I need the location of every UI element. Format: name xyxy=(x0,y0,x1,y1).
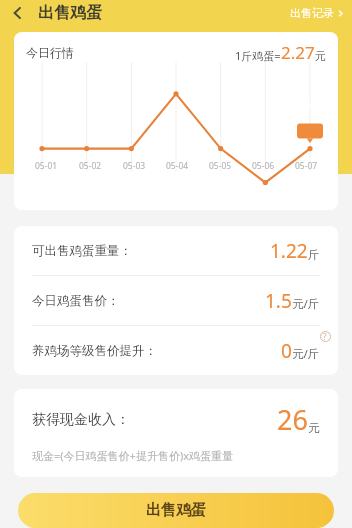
staticText: 获得现金收入： xyxy=(32,411,130,429)
staticText: 现金=(今日鸡蛋售价+提升售价)x鸡蛋重量 xyxy=(32,448,234,463)
staticText: 05-07 xyxy=(295,160,318,172)
staticText: 元/斤 xyxy=(292,296,320,312)
staticText: 1.22 xyxy=(270,238,308,264)
button[interactable]: 可出售鸡蛋重量： xyxy=(14,226,338,275)
staticText: 今日行情 xyxy=(26,45,74,60)
staticText: 05-05 xyxy=(209,160,232,172)
staticText: 养鸡场等级售价提升： xyxy=(32,343,157,359)
staticText: 元 xyxy=(315,49,326,63)
staticText: 出售鸡蛋 xyxy=(146,501,206,520)
staticText: 05-04 xyxy=(166,160,189,172)
staticText: 元/斤 xyxy=(292,346,320,362)
staticText: 0 xyxy=(281,338,292,364)
staticText: 今日鸡蛋售价： xyxy=(32,293,120,309)
staticText: 出售鸡蛋 xyxy=(38,3,102,23)
staticText: 05-01 xyxy=(35,160,58,172)
staticText: 1斤鸡蛋= xyxy=(235,48,281,63)
staticText: ? xyxy=(323,331,327,342)
button[interactable]: Help xyxy=(318,329,332,343)
staticText: 05-03 xyxy=(123,160,146,172)
button[interactable]: 出售记录 xyxy=(288,3,346,23)
button[interactable]: 出售鸡蛋 xyxy=(18,493,334,528)
staticText: 元 xyxy=(308,421,320,435)
staticText: 出售记录 xyxy=(290,6,334,20)
staticText: 26 xyxy=(277,401,308,438)
staticText: 2.27 xyxy=(281,41,315,64)
button[interactable]: 养鸡场等级售价提升： xyxy=(14,326,338,375)
staticText: 可出售鸡蛋重量： xyxy=(32,243,132,259)
staticText: 05-06 xyxy=(252,160,275,172)
button[interactable]: Back xyxy=(4,0,32,26)
staticText: 1.5 xyxy=(265,288,292,314)
staticText: 斤 xyxy=(308,248,320,262)
staticText: 05-02 xyxy=(79,160,102,172)
button[interactable]: 今日鸡蛋售价： xyxy=(14,276,338,325)
